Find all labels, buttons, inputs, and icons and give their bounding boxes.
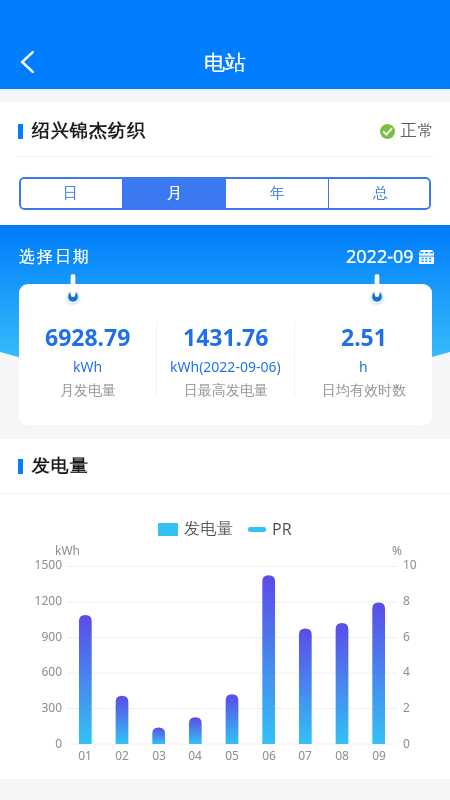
staticText: 年 [270, 184, 285, 203]
staticText: 2022-09 [346, 244, 414, 269]
staticText: kWh(2022-09-06) [170, 357, 281, 376]
staticText: 正常 [400, 121, 434, 141]
staticText: 日最高发电量 [184, 382, 268, 400]
staticText: 6928.79 [45, 321, 131, 352]
button[interactable]: 选择日期 [18, 247, 90, 267]
staticText: 2.51 [341, 321, 387, 352]
staticText: 01 [70, 747, 100, 763]
staticText: 电站 [204, 50, 246, 76]
staticText: PR [272, 518, 292, 540]
staticText: 10 [403, 556, 433, 572]
staticText: 900 [18, 628, 62, 644]
staticText: % [392, 542, 402, 558]
staticText: 发电量 [184, 519, 234, 539]
staticText: kWh [73, 357, 103, 376]
staticText: 04 [180, 747, 210, 763]
staticText: 6 [403, 628, 433, 644]
staticText: 选择日期 [18, 247, 90, 267]
staticText: 2 [403, 699, 433, 715]
staticText: 月 [167, 184, 182, 203]
staticText: 02 [107, 747, 137, 763]
staticText: 03 [144, 747, 174, 763]
button[interactable]: 月 [123, 177, 225, 210]
staticText: 09 [364, 747, 394, 763]
staticText: 月发电量 [60, 382, 116, 400]
button[interactable]: 2022-09 [346, 244, 434, 269]
button[interactable]: Back [4, 40, 48, 84]
button[interactable]: 年 [226, 177, 328, 210]
staticText: 8 [403, 592, 433, 608]
staticText: h [359, 357, 368, 376]
staticText: 发电量 [31, 455, 88, 478]
staticText: 1200 [18, 592, 62, 608]
button[interactable]: 日 [19, 177, 122, 210]
staticText: 日 [63, 184, 78, 203]
staticText: 07 [290, 747, 320, 763]
staticText: 1500 [18, 556, 62, 572]
staticText: 0 [403, 735, 433, 751]
staticText: 4 [403, 663, 433, 679]
staticText: 1431.76 [183, 321, 269, 352]
button[interactable]: 总 [329, 177, 431, 210]
staticText: 08 [327, 747, 357, 763]
staticText: 300 [18, 699, 62, 715]
staticText: 0 [18, 735, 62, 751]
staticText: 日均有效时数 [322, 382, 406, 400]
staticText: 绍兴锦杰纺织 [31, 120, 145, 143]
staticText: 06 [254, 747, 284, 763]
staticText: kWh [55, 542, 80, 558]
other: Select date [419, 250, 434, 264]
staticText: 总 [373, 184, 388, 203]
staticText: 600 [18, 663, 62, 679]
staticText: 05 [217, 747, 247, 763]
